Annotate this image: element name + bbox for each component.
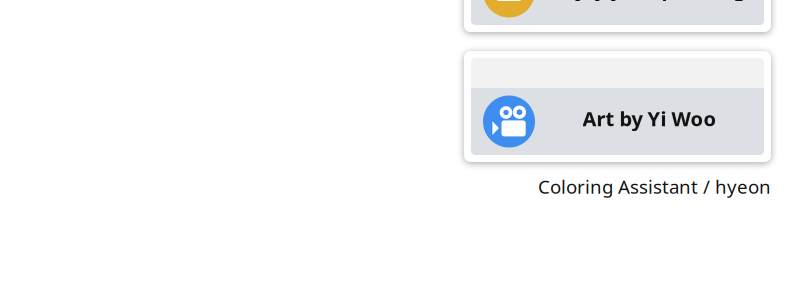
staticText: Art by Yi Woo [582,105,716,132]
button[interactable]: Enjoy your painting [471,0,764,25]
button[interactable]: Art by Yi Woo [471,88,764,155]
staticText: Coloring Assistant / hyeon [538,174,771,199]
staticText: Enjoy your painting [552,0,746,2]
